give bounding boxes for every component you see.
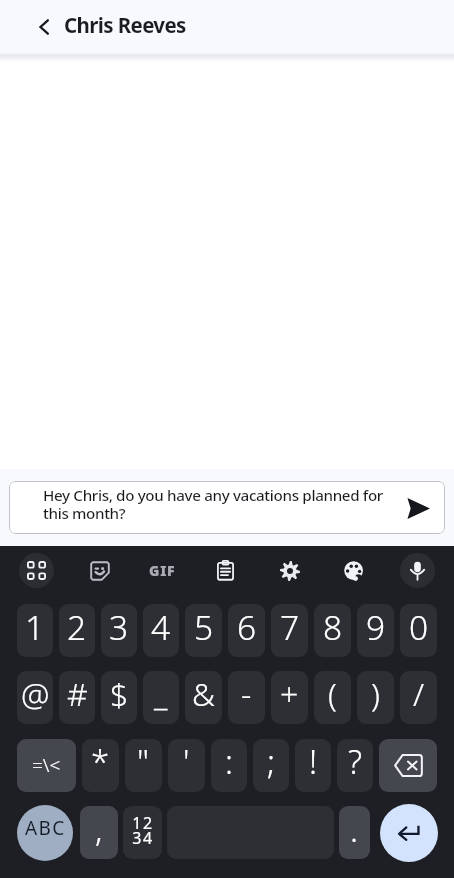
button[interactable]: # [59, 671, 95, 724]
button[interactable]: 8 [314, 604, 351, 657]
button[interactable]: 9 [357, 604, 394, 657]
button[interactable]: / [400, 671, 437, 724]
button[interactable]: Back [27, 10, 60, 43]
button[interactable]: 2 [59, 604, 95, 657]
button[interactable]: ! [295, 739, 331, 792]
staticText: 0 [409, 604, 429, 650]
staticText: GIF [149, 561, 176, 580]
button[interactable]: @ [17, 671, 53, 724]
staticText: =\< [32, 752, 61, 778]
staticText: : [225, 739, 234, 784]
staticText: + [280, 672, 299, 716]
staticText: 12 34 [132, 812, 154, 849]
button[interactable]: Settings [272, 553, 307, 588]
button[interactable]: * [82, 739, 119, 792]
button[interactable]: =\< [17, 739, 76, 792]
staticText: ) [371, 672, 380, 716]
staticText: ? [348, 739, 362, 784]
button[interactable]: 3 [101, 604, 137, 657]
button[interactable]: : [211, 739, 247, 792]
staticText: 4 [151, 604, 171, 650]
staticText: Hey Chris, do you have any vacations pla… [43, 485, 391, 524]
staticText: ABC [25, 815, 66, 841]
button[interactable]: ? [337, 739, 373, 792]
button[interactable]: Clipboard [208, 553, 243, 588]
button[interactable]: 4 [143, 604, 179, 657]
button[interactable]: Send [391, 481, 445, 534]
button[interactable]: Numbers [123, 806, 162, 859]
button[interactable]: 7 [271, 604, 308, 657]
staticText: ( [328, 672, 337, 716]
button[interactable]: Backspace [379, 739, 437, 792]
button[interactable]: ABC [17, 805, 73, 861]
staticText: ' [183, 739, 190, 784]
button[interactable]: _ [143, 671, 179, 724]
button[interactable]: - [228, 671, 265, 724]
staticText: 5 [194, 604, 214, 650]
staticText: $ [110, 672, 129, 716]
staticText: # [67, 672, 88, 716]
staticText: & [192, 672, 215, 716]
button[interactable]: + [271, 671, 308, 724]
button[interactable]: Theme [336, 553, 371, 588]
button[interactable]: ( [314, 671, 351, 724]
staticText: ; [267, 739, 276, 784]
button[interactable]: 0 [400, 604, 437, 657]
staticText: @ [21, 672, 50, 716]
staticText: _ [154, 672, 168, 716]
button[interactable]: ; [253, 739, 289, 792]
button[interactable]: GIF [145, 553, 180, 588]
staticText: Chris Reeves [64, 11, 186, 39]
staticText: 1 [25, 604, 45, 650]
button[interactable]: ) [357, 671, 394, 724]
button[interactable]: 1 [17, 604, 53, 657]
staticText: 6 [237, 604, 257, 650]
staticText: * [91, 739, 110, 784]
button[interactable]: & [185, 671, 222, 724]
button[interactable]: Stickers [82, 553, 117, 588]
staticText: - [241, 672, 252, 716]
button[interactable]: $ [101, 671, 137, 724]
staticText: ! [309, 739, 318, 784]
button[interactable]: . [339, 806, 370, 859]
button[interactable]: 5 [185, 604, 222, 657]
button[interactable]: 6 [228, 604, 265, 657]
staticText: 8 [323, 604, 343, 650]
staticText: , [95, 807, 103, 852]
button[interactable]: Apps [19, 553, 54, 588]
staticText: / [413, 672, 425, 716]
staticText: 2 [67, 604, 87, 650]
button[interactable]: ' [168, 739, 205, 792]
staticText: 7 [280, 604, 300, 650]
staticText: 9 [366, 604, 386, 650]
button[interactable]: Enter [380, 804, 438, 862]
staticText: . [350, 807, 359, 852]
button[interactable]: " [125, 739, 162, 792]
staticText: 3 [109, 604, 129, 650]
button[interactable]: , [80, 806, 118, 859]
button[interactable]: Voice input [400, 553, 435, 588]
staticText: " [137, 739, 150, 784]
